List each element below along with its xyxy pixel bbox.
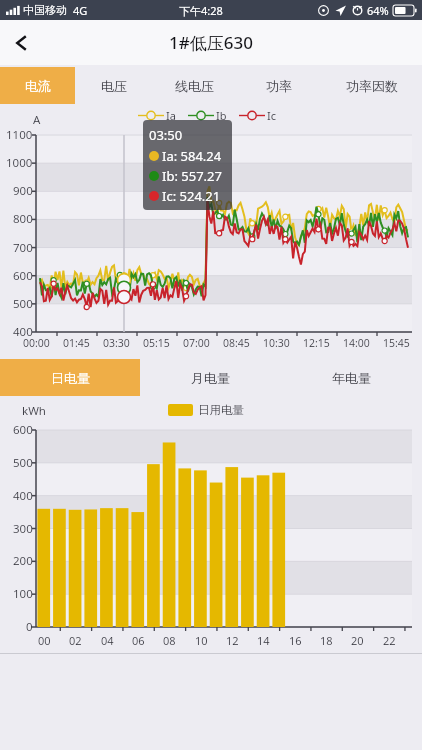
staticText: 800 [13, 211, 33, 227]
staticText: 年电量 [332, 370, 371, 386]
staticText: 10 [195, 633, 208, 648]
staticText: Ib: 557.27 [162, 167, 222, 185]
staticText: 08 [163, 633, 176, 648]
staticText: 08:45 [223, 336, 250, 350]
button[interactable]: 月电量 [140, 359, 281, 396]
staticText: 日用电量 [198, 403, 244, 417]
staticText: kWh [22, 403, 46, 419]
staticText: 12:15 [303, 336, 330, 350]
staticText: 00:00 [23, 336, 50, 350]
staticText: 月电量 [191, 370, 230, 386]
staticText: 00 [38, 633, 51, 648]
staticText: Ia [166, 108, 176, 123]
staticText: 16 [289, 633, 302, 648]
staticText: 06 [132, 633, 145, 648]
staticText: 1100 [6, 127, 33, 143]
staticText: 04 [101, 633, 114, 648]
staticText: 中国移动 [23, 3, 67, 17]
staticText: 05:15 [143, 336, 170, 350]
staticText: 电流 [25, 78, 51, 94]
staticText: 10:30 [263, 336, 290, 350]
staticText: 300 [13, 521, 33, 537]
button[interactable]: 电流 [0, 67, 75, 104]
staticText: 15:45 [383, 336, 410, 350]
staticText: 18 [320, 633, 333, 648]
staticText: 02 [69, 633, 82, 648]
button[interactable]: Back [0, 22, 42, 64]
staticText: 600 [13, 268, 33, 284]
staticText: 14:00 [343, 336, 370, 350]
staticText: Ic [267, 108, 277, 123]
staticText: 200 [13, 553, 33, 569]
staticText: 4G [73, 3, 88, 18]
staticText: 电压 [101, 78, 127, 94]
staticText: 03:50 [149, 126, 183, 144]
button[interactable]: 年电量 [281, 359, 422, 396]
staticText: 22 [383, 633, 396, 648]
staticText: 14 [257, 633, 270, 648]
staticText: Ic: 524.21 [162, 187, 221, 205]
staticText: 日电量 [51, 370, 90, 386]
staticText: 下午4:28 [179, 3, 223, 18]
staticText: 0 [26, 619, 33, 635]
staticText: Ia: 584.24 [162, 147, 222, 165]
staticText: A [33, 112, 41, 128]
button[interactable]: 线电压 [152, 67, 236, 104]
staticText: 64% [367, 3, 389, 18]
staticText: 线电压 [175, 78, 214, 94]
staticText: 1000 [6, 155, 33, 171]
staticText: 12 [226, 633, 239, 648]
staticText: 03:30 [103, 336, 130, 350]
staticText: 500 [13, 296, 33, 312]
staticText: 1#低压630 [169, 31, 253, 54]
staticText: 功率因数 [346, 78, 398, 94]
staticText: 100 [13, 586, 33, 602]
staticText: 600 [13, 422, 33, 438]
staticText: Ib [216, 108, 227, 123]
staticText: 900 [13, 183, 33, 199]
button[interactable]: 功率 [236, 67, 322, 104]
staticText: 700 [13, 240, 33, 256]
button[interactable]: 功率因数 [322, 67, 422, 104]
staticText: 400 [13, 324, 33, 340]
staticText: 400 [13, 488, 33, 504]
button[interactable]: 日电量 [0, 359, 140, 396]
staticText: 01:45 [63, 336, 90, 350]
button[interactable]: 电压 [75, 67, 152, 104]
staticText: 500 [13, 455, 33, 471]
staticText: 07:00 [183, 336, 210, 350]
staticText: 20 [351, 633, 364, 648]
staticText: 功率 [266, 78, 292, 94]
